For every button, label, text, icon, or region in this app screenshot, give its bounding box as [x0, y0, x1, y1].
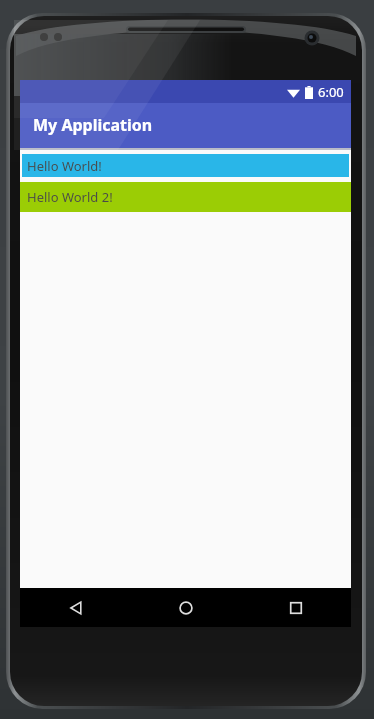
staticText: My Application [33, 114, 153, 136]
staticText: Hello World! [27, 157, 102, 175]
button[interactable]: My Application [20, 103, 351, 148]
staticText: Hello World 2! [27, 188, 113, 206]
button[interactable]: Back [20, 588, 131, 627]
button[interactable]: Recent apps [241, 588, 351, 627]
staticText: 6:00 [318, 83, 344, 101]
button[interactable]: Hello World 2! [20, 182, 351, 212]
button[interactable]: Home [131, 588, 241, 627]
button[interactable]: Hello World! [22, 154, 349, 177]
